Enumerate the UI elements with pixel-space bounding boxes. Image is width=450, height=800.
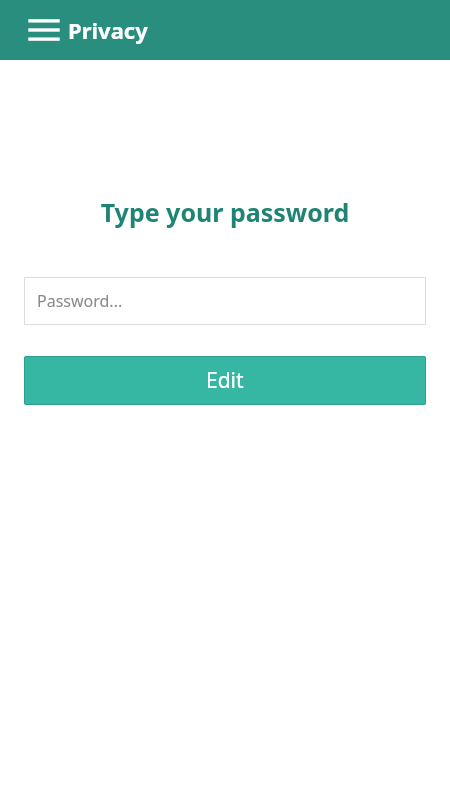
staticText: Privacy <box>68 15 148 45</box>
staticText: Edit <box>206 366 244 395</box>
staticText: Type your password <box>0 195 450 229</box>
button[interactable]: Edit <box>24 356 426 405</box>
button[interactable]: Password... <box>24 277 426 325</box>
staticText: Password... <box>37 290 123 312</box>
button[interactable]: Open navigation menu <box>22 8 66 52</box>
